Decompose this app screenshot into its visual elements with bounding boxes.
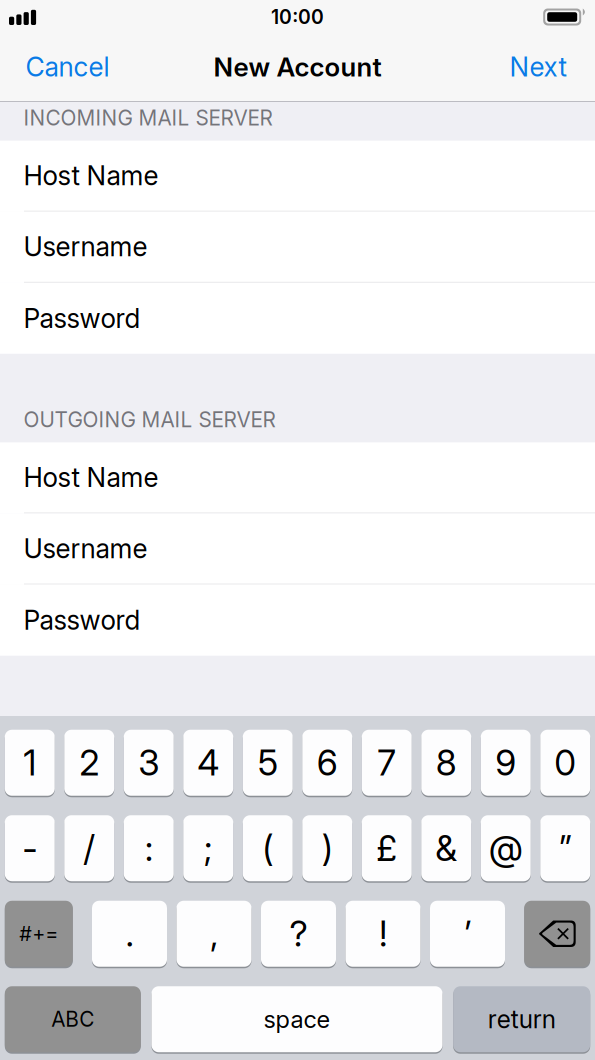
- button[interactable]: ): [302, 814, 352, 882]
- staticText: New Account: [213, 51, 381, 83]
- staticText: /: [83, 827, 95, 870]
- staticText: #+=: [19, 922, 58, 946]
- staticText: Username: [24, 231, 148, 263]
- staticText: ;: [204, 827, 213, 870]
- staticText: 3: [138, 741, 159, 784]
- staticText: &: [435, 827, 457, 870]
- button[interactable]: Username: [0, 513, 595, 585]
- staticText: 4: [197, 741, 219, 784]
- button[interactable]: ,: [176, 900, 251, 967]
- button[interactable]: Host Name: [0, 141, 595, 212]
- staticText: OUTGOING MAIL SERVER: [23, 407, 275, 432]
- staticText: 10:00: [271, 5, 324, 29]
- staticText: 2: [79, 741, 99, 784]
- staticText: 7: [377, 741, 396, 784]
- staticText: Next: [509, 51, 566, 83]
- button[interactable]: &: [421, 814, 471, 882]
- button[interactable]: £: [362, 814, 412, 882]
- staticText: 6: [317, 741, 338, 784]
- button[interactable]: 9: [481, 729, 531, 796]
- button[interactable]: 2: [64, 729, 114, 796]
- staticText: (: [262, 827, 273, 870]
- button[interactable]: ’: [430, 900, 505, 967]
- staticText: 1: [23, 741, 36, 784]
- button[interactable]: space: [151, 985, 442, 1053]
- button[interactable]: ABC: [5, 985, 141, 1053]
- staticText: £: [376, 827, 397, 870]
- staticText: ABC: [51, 1007, 94, 1032]
- button[interactable]: !: [345, 900, 420, 967]
- staticText: return: [488, 1004, 556, 1034]
- staticText: @: [489, 827, 523, 870]
- button[interactable]: @: [481, 814, 531, 882]
- button[interactable]: -: [5, 814, 55, 882]
- button[interactable]: 0: [540, 729, 590, 796]
- button[interactable]: Password: [0, 585, 595, 656]
- button[interactable]: 1: [5, 729, 55, 796]
- button[interactable]: Username: [0, 212, 595, 283]
- button[interactable]: Host Name: [0, 442, 595, 513]
- button[interactable]: .: [92, 900, 167, 967]
- button[interactable]: Cancel: [0, 36, 129, 102]
- button[interactable]: 8: [421, 729, 471, 796]
- button[interactable]: 4: [183, 729, 233, 796]
- button[interactable]: 3: [124, 729, 174, 796]
- button[interactable]: :: [124, 814, 174, 882]
- staticText: ”: [559, 827, 572, 870]
- staticText: :: [145, 827, 153, 870]
- button[interactable]: /: [64, 814, 114, 882]
- staticText: 9: [495, 741, 516, 784]
- button[interactable]: 5: [243, 729, 293, 796]
- staticText: Password: [24, 604, 141, 636]
- staticText: 5: [258, 741, 278, 784]
- button[interactable]: 7: [362, 729, 412, 796]
- staticText: Host Name: [24, 461, 159, 493]
- staticText: space: [263, 1005, 330, 1034]
- staticText: ,: [210, 912, 218, 955]
- button[interactable]: Next: [489, 36, 595, 102]
- button[interactable]: ?: [261, 900, 336, 967]
- staticText: Username: [24, 533, 148, 564]
- button[interactable]: (: [243, 814, 293, 882]
- button[interactable]: ”: [540, 814, 590, 882]
- button[interactable]: ;: [183, 814, 233, 882]
- staticText: ’: [464, 912, 471, 955]
- staticText: Host Name: [24, 160, 159, 192]
- staticText: ): [322, 827, 333, 870]
- staticText: !: [379, 912, 387, 955]
- button[interactable]: return: [453, 985, 590, 1053]
- staticText: -: [22, 827, 37, 870]
- button[interactable]: Delete: [524, 900, 590, 967]
- staticText: ?: [289, 912, 307, 955]
- button[interactable]: 6: [302, 729, 352, 796]
- staticText: 0: [554, 741, 576, 784]
- staticText: Password: [24, 302, 141, 334]
- button[interactable]: Password: [0, 283, 595, 354]
- button[interactable]: #+=: [5, 900, 73, 967]
- staticText: 8: [436, 741, 457, 784]
- staticText: INCOMING MAIL SERVER: [23, 105, 272, 130]
- staticText: .: [125, 912, 133, 955]
- staticText: Cancel: [25, 51, 109, 83]
